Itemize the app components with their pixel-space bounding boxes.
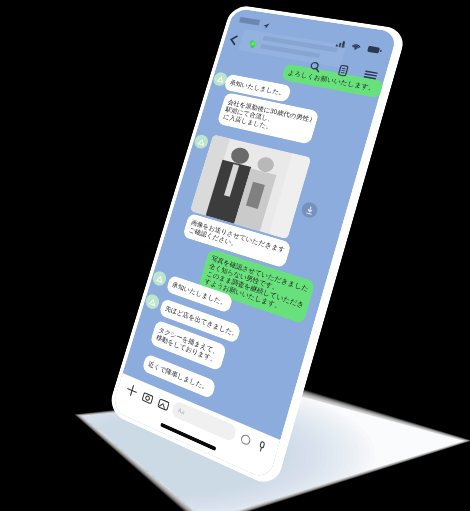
button[interactable] <box>238 29 346 68</box>
staticText: 全く知らない男性です。 <box>208 262 280 293</box>
button[interactable]: Voice message <box>252 436 271 456</box>
button[interactable]: Emoji <box>236 429 254 449</box>
button[interactable]: 承知いたしました。 <box>223 73 292 103</box>
staticText: 承知いたしました。 <box>229 79 286 97</box>
button[interactable]: Albums <box>333 62 352 79</box>
staticText: このまま調査を継続していただきま <box>206 270 304 309</box>
button[interactable]: Search <box>305 58 324 74</box>
button[interactable] <box>190 134 311 239</box>
button[interactable]: よろしくお願いいたします。 <box>281 63 384 99</box>
button[interactable]: Download image <box>300 201 319 219</box>
button[interactable]: 画像をお送りさせていただきます。 <box>182 213 292 268</box>
button[interactable]: タクシーを捕まえて、 <box>149 319 227 372</box>
staticText: 会社を退勤後に30歳代の男性と <box>227 97 313 124</box>
staticText: すようお願いいたします。 <box>203 277 283 311</box>
staticText: 承知いたしました。 <box>171 281 227 307</box>
staticText: 写真を確認させていただきました。 <box>210 254 309 293</box>
button[interactable]: Aa <box>170 400 238 443</box>
staticText: 移動をしております。 <box>155 333 219 365</box>
button[interactable]: 承知いたしました。 <box>165 275 234 314</box>
staticText: タクシーを捕まえて、 <box>157 326 221 357</box>
button[interactable]: Camera <box>139 387 156 407</box>
staticText: 先ほど店を出てきました。 <box>164 304 235 337</box>
button[interactable]: 先ほど店を出てきました。 <box>158 298 242 344</box>
button[interactable]: Add <box>123 381 141 400</box>
button[interactable]: 会社を退勤後に30歳代の男性と <box>217 92 320 145</box>
button[interactable]: Back <box>225 32 242 47</box>
staticText: 画像をお送りさせていただきます。 <box>190 219 285 254</box>
staticText: 近くで降車しました。 <box>147 360 210 392</box>
staticText: Aa <box>177 406 186 417</box>
button[interactable]: 写真を確認させていただきました。 <box>198 248 316 324</box>
button[interactable]: Gallery <box>154 394 172 414</box>
staticText: に入店しました。 <box>222 113 274 131</box>
staticText: 駅前にて合流し、 <box>224 106 276 124</box>
button[interactable]: 近くで降車しました。 <box>141 353 217 399</box>
staticText: ご確認ください。 <box>188 226 239 248</box>
staticText: よろしくお願いいたします。 <box>287 69 377 93</box>
button[interactable]: Menu <box>361 66 381 84</box>
